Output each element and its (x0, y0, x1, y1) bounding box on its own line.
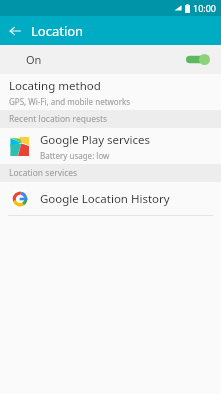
staticText: Recent location requests (9, 113, 108, 125)
staticText: On (26, 52, 42, 67)
staticText: Locating method (9, 78, 101, 94)
button[interactable]: On (0, 45, 221, 74)
staticText: Google Play services (40, 132, 151, 148)
button[interactable]: Locating method (0, 74, 221, 110)
staticText: 10:00 (193, 2, 217, 14)
button[interactable]: Google Play services (0, 128, 221, 164)
button[interactable]: Google Location History (0, 182, 221, 215)
staticText: GPS, Wi-Fi, and mobile networks (9, 96, 131, 107)
staticText: Location services (9, 167, 78, 179)
staticText: Battery usage: low (40, 150, 110, 161)
staticText: Google Location History (40, 191, 170, 207)
staticText: Location (31, 22, 84, 40)
button[interactable]: Back (0, 16, 29, 45)
